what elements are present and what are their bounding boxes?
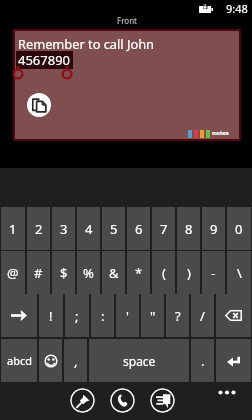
button[interactable]: 6 (127, 207, 150, 250)
button[interactable]: % (77, 251, 100, 294)
button[interactable]: Copy (27, 93, 51, 117)
button[interactable]: * (127, 251, 150, 294)
button[interactable]: ! (39, 294, 63, 337)
button[interactable]: 5 (102, 207, 125, 250)
button[interactable]: Tab (1, 294, 37, 337)
staticText: 0 (235, 220, 243, 238)
staticText: Front (117, 15, 137, 26)
staticText: notes (212, 129, 229, 137)
button[interactable]: " (141, 294, 164, 337)
staticText: & (109, 264, 119, 282)
button[interactable]: ) (177, 251, 200, 294)
button[interactable]: # (27, 251, 50, 294)
button[interactable]: 8 (177, 207, 200, 250)
staticText: ( (162, 264, 166, 282)
staticText: : (101, 307, 105, 325)
button[interactable]: Emoji (39, 339, 62, 382)
button[interactable]: & (102, 251, 125, 294)
button[interactable]: 4 (77, 207, 100, 250)
button[interactable]: $ (52, 251, 75, 294)
staticText: \ (237, 264, 242, 282)
staticText: 4 (85, 220, 93, 238)
button[interactable]: 1 (1, 207, 25, 250)
staticText: space (123, 353, 156, 369)
staticText: Remember to call John (18, 35, 155, 52)
staticText: 6 (135, 220, 143, 238)
staticText: ' (126, 307, 129, 325)
button[interactable]: 0 (227, 207, 251, 250)
button[interactable]: 7 (152, 207, 175, 250)
staticText: ; (75, 307, 79, 325)
staticText: * (135, 264, 143, 282)
staticText: ! (49, 307, 53, 325)
staticText: . (201, 352, 205, 370)
staticText: " (150, 307, 156, 325)
staticText: $ (60, 264, 68, 282)
staticText: abcd (7, 353, 32, 368)
button[interactable]: @ (1, 251, 25, 294)
button[interactable]: ; (65, 294, 89, 337)
button[interactable]: Backspace (216, 294, 251, 337)
button[interactable]: Call (110, 388, 135, 413)
button[interactable]: ? (166, 294, 189, 337)
staticText: 5 (110, 220, 118, 238)
button[interactable]: Pin (70, 388, 95, 413)
staticText: # (34, 264, 43, 282)
staticText: 8 (185, 220, 193, 238)
staticText: / (200, 307, 205, 325)
staticText: 1 (9, 220, 17, 238)
button[interactable]: , (64, 339, 87, 382)
button[interactable]: Send message (150, 388, 175, 413)
staticText: 2 (35, 220, 43, 238)
button[interactable]: \ (227, 251, 251, 294)
button[interactable]: - (202, 251, 225, 294)
staticText: 9 (210, 220, 218, 238)
button[interactable]: 9 (202, 207, 225, 250)
button[interactable]: space (89, 339, 189, 382)
button[interactable]: / (191, 294, 214, 337)
staticText: 4567890 (18, 51, 71, 69)
staticText: ? (175, 307, 181, 325)
staticText: % (83, 264, 94, 282)
staticText: , (74, 352, 78, 370)
button[interactable]: : (91, 294, 114, 337)
button[interactable]: More options (210, 382, 252, 420)
button[interactable]: ' (116, 294, 139, 337)
button[interactable]: ( (152, 251, 175, 294)
staticText: 9:48 (226, 1, 248, 16)
staticText: 7 (160, 220, 168, 238)
button[interactable]: 3 (52, 207, 75, 250)
staticText: ) (187, 264, 191, 282)
staticText: - (211, 264, 216, 282)
button[interactable]: Enter (216, 339, 251, 382)
button[interactable]: abcd (1, 339, 37, 382)
button[interactable]: 2 (27, 207, 50, 250)
button[interactable]: . (191, 339, 214, 382)
staticText: @ (7, 264, 19, 282)
staticText: 3 (60, 220, 68, 238)
